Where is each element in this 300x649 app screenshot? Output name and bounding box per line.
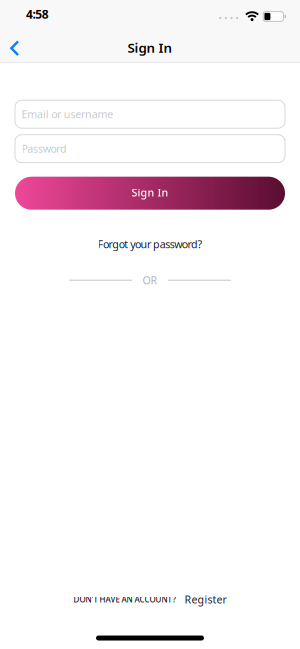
staticText: Register <box>184 592 226 606</box>
staticText: 4:58 <box>26 6 49 22</box>
button[interactable]: Forgot your password? <box>50 237 250 251</box>
button[interactable]: Back <box>0 40 20 56</box>
staticText: Email or username <box>21 107 113 121</box>
button[interactable]: Register <box>184 592 226 606</box>
staticText: Sign In <box>131 185 168 199</box>
button[interactable]: Sign In <box>15 177 285 210</box>
staticText: Forgot your password? <box>97 237 202 251</box>
staticText: OR <box>142 273 157 287</box>
staticText: Sign In <box>127 39 172 56</box>
staticText: Password <box>21 142 67 156</box>
staticText: DON'T HAVE AN ACCOUNT? <box>73 594 176 605</box>
